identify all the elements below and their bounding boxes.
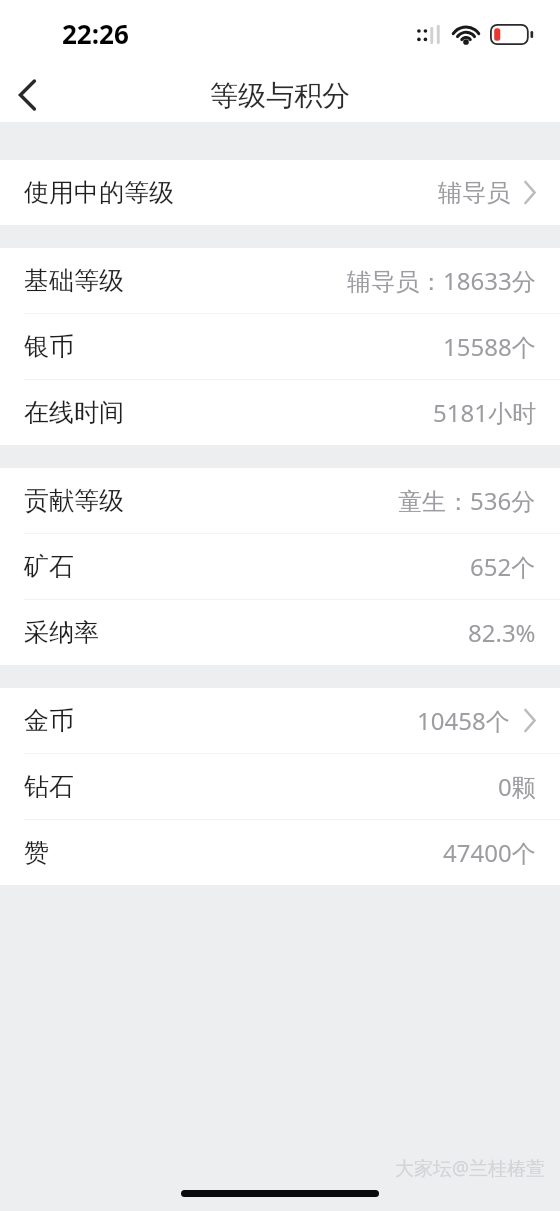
staticText: 等级与积分 (210, 78, 350, 113)
staticText: 47400个 (443, 836, 536, 869)
button[interactable]: 钻石 (0, 753, 560, 819)
staticText: 赞 (24, 837, 49, 868)
button[interactable]: 贡献等级 (0, 468, 560, 533)
staticText: 辅导员 (438, 178, 510, 208)
button[interactable]: 在线时间 (0, 379, 560, 445)
staticText: 使用中的等级 (24, 177, 174, 208)
staticText: 5181小时 (433, 396, 536, 429)
staticText: 银币 (24, 331, 74, 362)
staticText: 大家坛@兰桂椿萱 (395, 1155, 546, 1181)
staticText: 10458个 (417, 704, 510, 737)
button[interactable]: 金币 (0, 688, 560, 753)
staticText: 童生：536分 (398, 484, 536, 517)
staticText: 82.3% (468, 616, 536, 649)
staticText: 基础等级 (24, 265, 124, 296)
staticText: 22:26 (62, 16, 129, 51)
staticText: 辅导员：18633分 (347, 264, 536, 297)
staticText: 652个 (470, 550, 536, 583)
button[interactable]: Back (0, 68, 56, 122)
staticText: 矿石 (24, 551, 74, 582)
staticText: 金币 (24, 705, 74, 736)
staticText: 贡献等级 (24, 485, 124, 516)
button[interactable]: 赞 (0, 819, 560, 885)
staticText: 钻石 (24, 771, 74, 802)
staticText: 0颗 (498, 770, 536, 803)
staticText: 15588个 (443, 330, 536, 363)
button[interactable]: 矿石 (0, 533, 560, 599)
button[interactable]: 采纳率 (0, 599, 560, 665)
staticText: 采纳率 (24, 617, 99, 648)
staticText: 在线时间 (24, 397, 124, 428)
button[interactable]: 基础等级 (0, 248, 560, 313)
button[interactable]: 银币 (0, 313, 560, 379)
button[interactable]: 使用中的等级 (0, 160, 560, 225)
